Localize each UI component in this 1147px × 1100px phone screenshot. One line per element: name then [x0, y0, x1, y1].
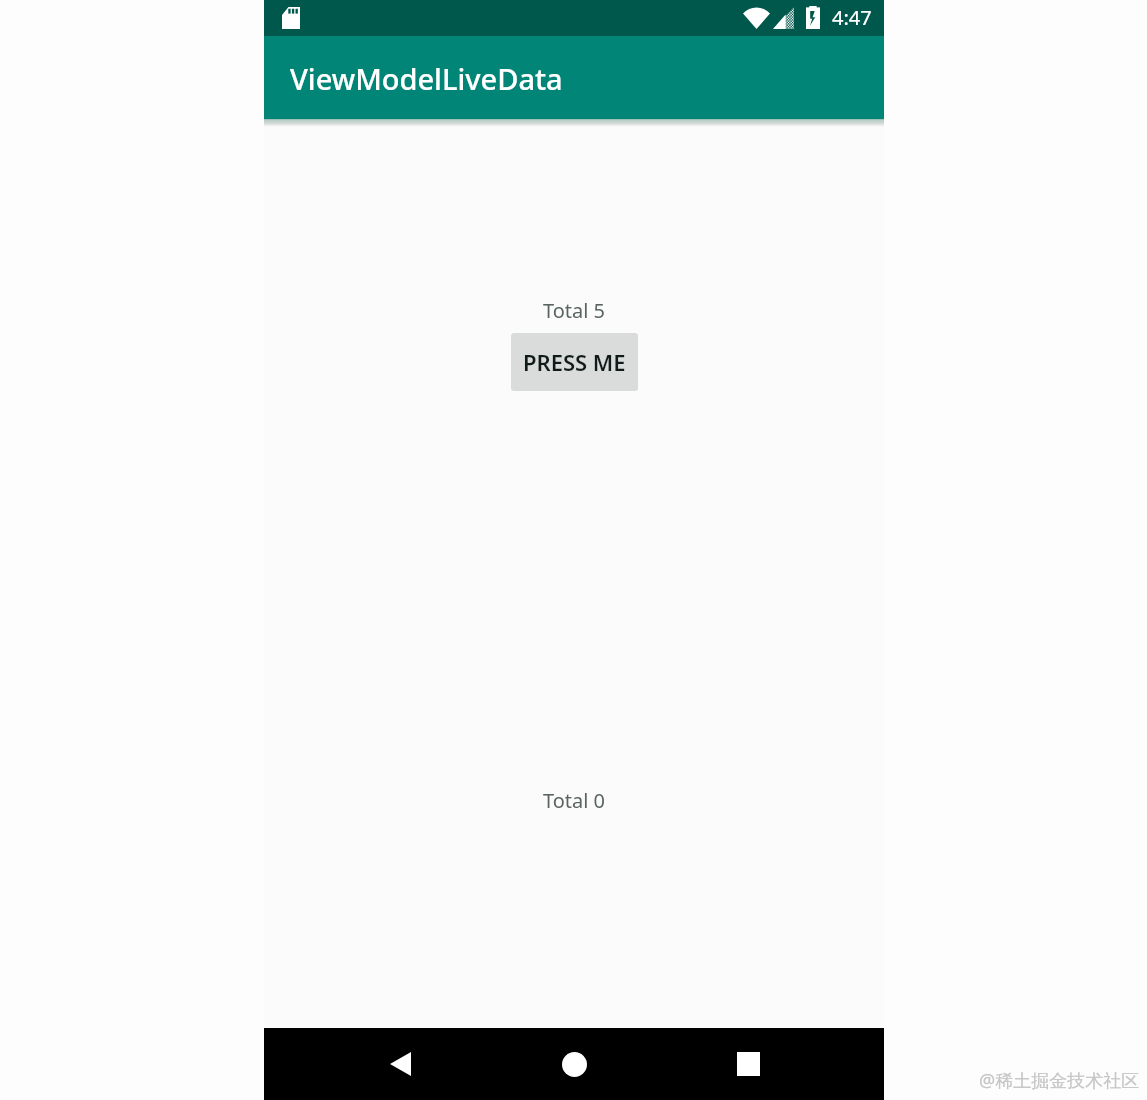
button[interactable]: Home	[487, 1028, 661, 1100]
button[interactable]: PRESS ME	[511, 333, 638, 391]
staticText: Total 5	[543, 297, 606, 324]
staticText: @稀土掘金技术社区	[979, 1068, 1140, 1093]
staticText: ViewModelLiveData	[290, 59, 563, 98]
button[interactable]: Back	[313, 1028, 487, 1100]
button[interactable]: Recent apps	[661, 1028, 835, 1100]
staticText: 4:47	[832, 4, 872, 31]
staticText: Total 0	[543, 787, 606, 814]
staticText: PRESS ME	[523, 347, 626, 377]
